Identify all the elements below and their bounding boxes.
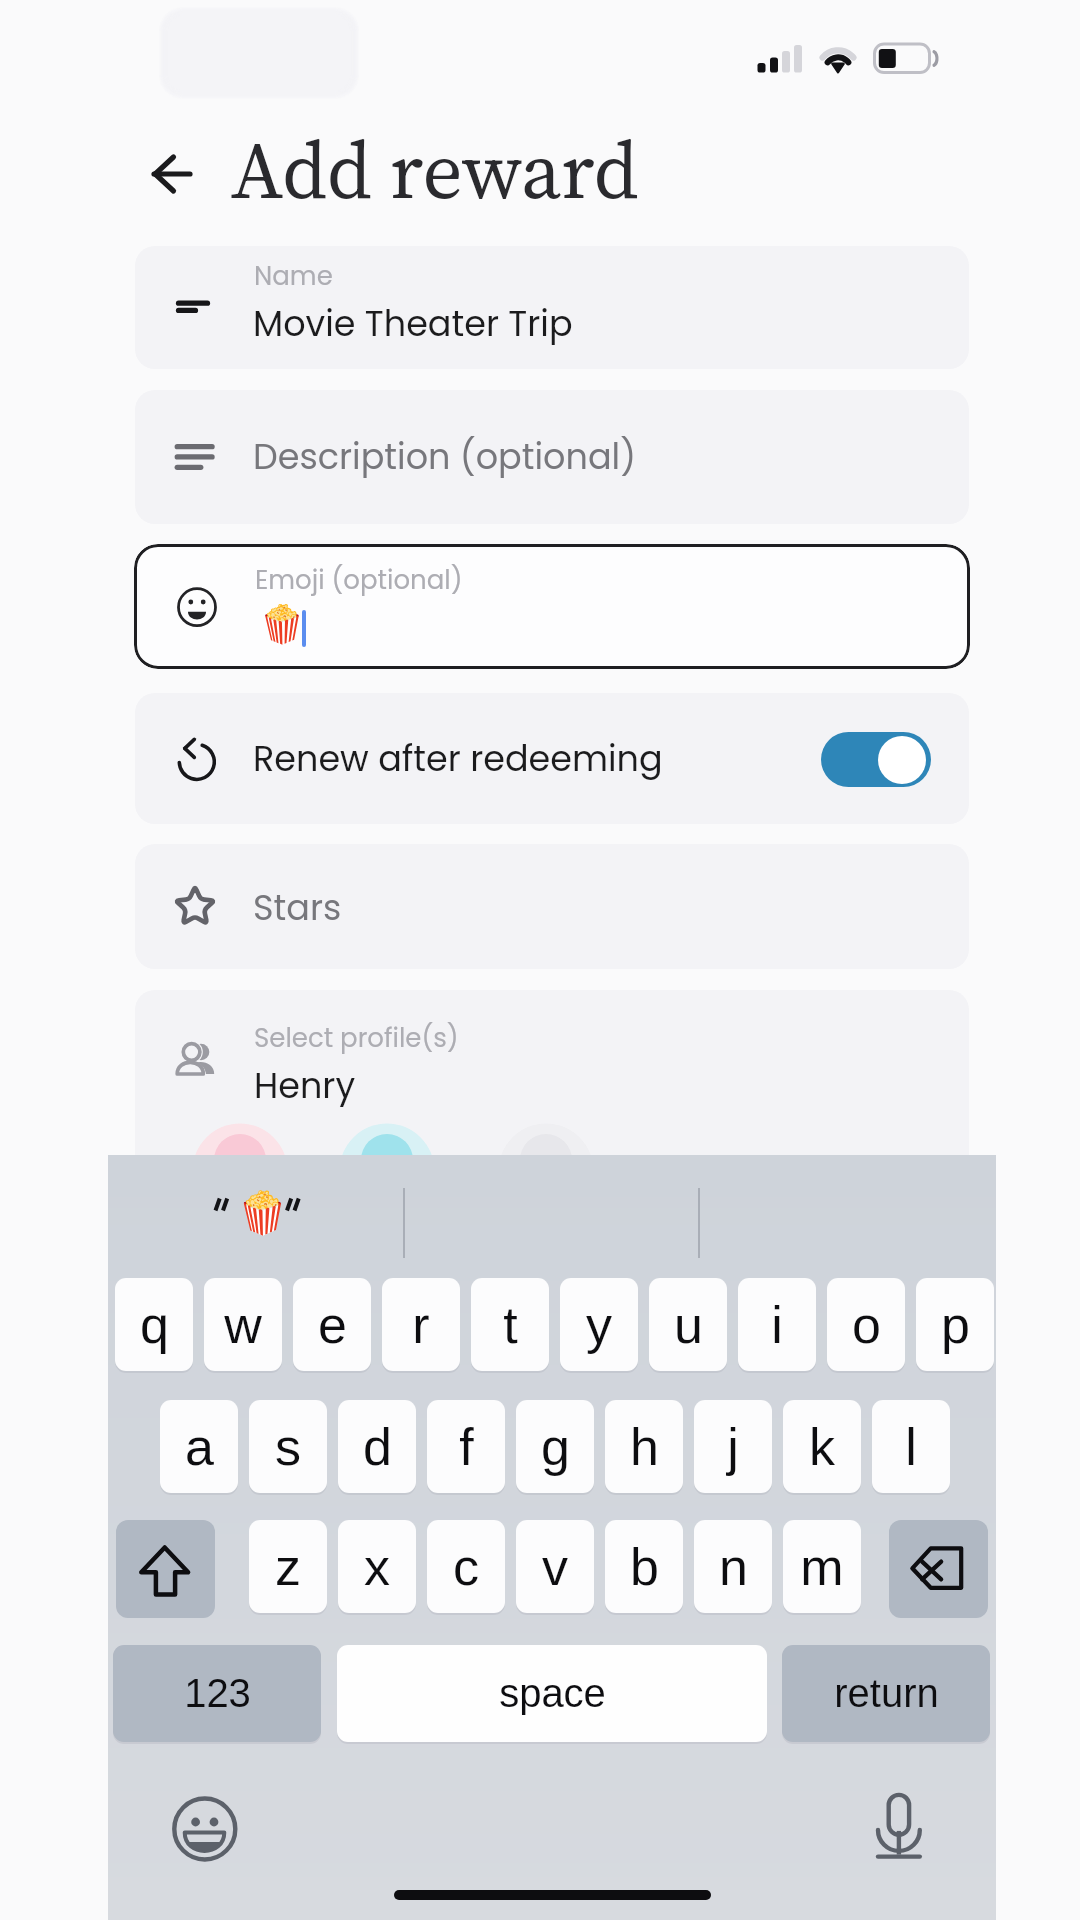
- button[interactable]: Emoji (optional): [134, 544, 970, 669]
- button[interactable]: Back: [140, 132, 214, 208]
- button[interactable]: a: [160, 1400, 238, 1493]
- button[interactable]: p: [916, 1278, 994, 1371]
- staticText: z: [275, 1538, 301, 1596]
- button[interactable]: Shift: [116, 1520, 215, 1618]
- staticText: Stars: [253, 883, 342, 932]
- staticText: Description (optional): [253, 432, 637, 481]
- staticText: Add reward: [231, 116, 639, 224]
- button[interactable]: t: [471, 1278, 549, 1371]
- button[interactable]: g: [516, 1400, 594, 1493]
- button[interactable]: Name: [135, 246, 969, 369]
- button[interactable]: u: [649, 1278, 727, 1371]
- staticText: w: [224, 1296, 262, 1354]
- button[interactable]: k: [783, 1400, 861, 1493]
- staticText: m: [800, 1538, 844, 1596]
- staticText: g: [541, 1418, 570, 1476]
- staticText: Emoji (optional): [255, 562, 463, 598]
- button[interactable]: h: [605, 1400, 683, 1493]
- button[interactable]: Description (optional): [135, 390, 969, 524]
- button[interactable]: Select profile(s): [135, 990, 969, 1210]
- staticText: n: [719, 1538, 748, 1596]
- button[interactable]: f: [427, 1400, 505, 1493]
- button[interactable]: r: [382, 1278, 460, 1371]
- button[interactable]: Renew after redeeming: [135, 693, 969, 824]
- staticText: p: [941, 1296, 970, 1354]
- button[interactable]: Dictation: [878, 1785, 938, 1861]
- button[interactable]: space: [337, 1645, 767, 1742]
- staticText: i: [771, 1296, 783, 1354]
- staticText: r: [412, 1296, 430, 1354]
- staticText: l: [905, 1418, 917, 1476]
- staticText: 🍿: [237, 1189, 289, 1237]
- staticText: j: [727, 1418, 739, 1476]
- button[interactable]: e: [293, 1278, 371, 1371]
- button[interactable]: c: [427, 1520, 505, 1613]
- staticText: f: [459, 1418, 474, 1476]
- staticText: 123: [184, 1671, 251, 1716]
- staticText: d: [363, 1418, 392, 1476]
- staticText: b: [630, 1538, 659, 1596]
- staticText: v: [542, 1538, 568, 1596]
- button[interactable]: i: [738, 1278, 816, 1371]
- staticText: space: [499, 1671, 606, 1716]
- button[interactable]: Renew after redeeming toggle: [821, 732, 931, 787]
- button[interactable]: y: [560, 1278, 638, 1371]
- staticText: q: [140, 1296, 169, 1354]
- button[interactable]: Backspace: [889, 1520, 988, 1618]
- staticText: t: [503, 1296, 518, 1354]
- staticText: y: [586, 1296, 612, 1354]
- button[interactable]: s: [249, 1400, 327, 1493]
- staticText: Henry: [254, 1061, 356, 1110]
- staticText: s: [275, 1418, 301, 1476]
- button[interactable]: b: [605, 1520, 683, 1613]
- button[interactable]: q: [115, 1278, 193, 1371]
- button[interactable]: Emoji keyboard: [171, 1795, 239, 1863]
- staticText: 🍿: [259, 603, 306, 646]
- button[interactable]: l: [872, 1400, 950, 1493]
- staticText: e: [318, 1296, 347, 1354]
- button[interactable]: return: [782, 1645, 990, 1742]
- button[interactable]: v: [516, 1520, 594, 1613]
- staticText: Movie Theater Trip: [253, 299, 573, 348]
- staticText: h: [630, 1418, 659, 1476]
- staticText: return: [834, 1671, 939, 1716]
- button[interactable]: o: [827, 1278, 905, 1371]
- button[interactable]: m: [783, 1520, 861, 1613]
- button[interactable]: d: [338, 1400, 416, 1493]
- staticText: x: [364, 1538, 390, 1596]
- staticText: a: [185, 1418, 214, 1476]
- button[interactable]: Stars: [135, 844, 969, 969]
- button[interactable]: w: [204, 1278, 282, 1371]
- staticText: u: [674, 1296, 703, 1354]
- staticText: Name: [254, 258, 333, 294]
- staticText: Select profile(s): [254, 1020, 459, 1056]
- staticText: k: [809, 1418, 835, 1476]
- staticText: Renew after redeeming: [253, 734, 663, 783]
- button[interactable]: x: [338, 1520, 416, 1613]
- button[interactable]: z: [249, 1520, 327, 1613]
- staticText: o: [852, 1296, 881, 1354]
- button[interactable]: j: [694, 1400, 772, 1493]
- staticText: c: [453, 1538, 479, 1596]
- button[interactable]: n: [694, 1520, 772, 1613]
- button[interactable]: 123: [113, 1645, 321, 1742]
